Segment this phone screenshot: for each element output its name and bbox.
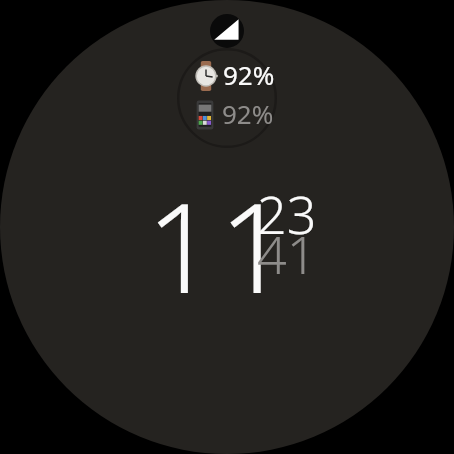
- staticText: 92%: [222, 96, 274, 131]
- staticText: 41: [257, 218, 317, 289]
- staticText: 23: [257, 178, 317, 249]
- button[interactable]: 92%: [193, 58, 275, 93]
- button[interactable]: 92%: [194, 97, 274, 132]
- staticText: 11: [146, 160, 292, 329]
- staticText: 92%: [223, 57, 275, 92]
- button[interactable]: Battery complication: [177, 48, 277, 148]
- other: Indicator: [210, 12, 244, 51]
